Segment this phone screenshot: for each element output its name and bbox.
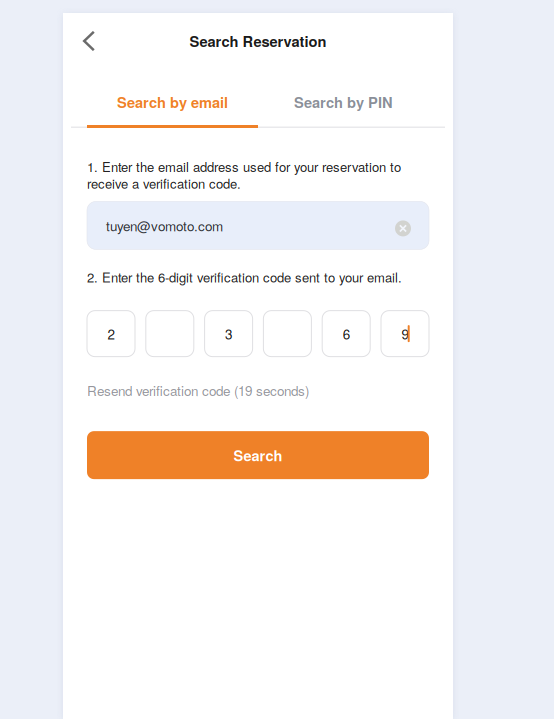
button[interactable]: Clear email bbox=[387, 210, 417, 240]
staticText: tuyen@vomoto.com bbox=[106, 216, 223, 235]
button[interactable]: Resend verification code (19 seconds) bbox=[87, 381, 429, 399]
staticText: 3 bbox=[225, 324, 232, 343]
staticText: Search bbox=[233, 445, 282, 466]
button[interactable]: Search by PIN bbox=[258, 88, 429, 128]
staticText: Resend verification code (19 seconds) bbox=[87, 380, 309, 400]
button[interactable]: Search bbox=[87, 431, 429, 479]
button[interactable]: Search by email bbox=[87, 88, 258, 128]
staticText: 9 bbox=[401, 324, 408, 343]
staticText: 2. Enter the 6-digit verification code s… bbox=[87, 267, 402, 286]
staticText: 2 bbox=[107, 324, 114, 343]
staticText: 6 bbox=[343, 324, 350, 343]
button[interactable]: Back bbox=[63, 19, 115, 63]
staticText: Search Reservation bbox=[189, 30, 326, 51]
staticText: Search by PIN bbox=[294, 91, 393, 112]
staticText: Search by email bbox=[117, 91, 228, 112]
staticText: 1. Enter the email address used for your… bbox=[87, 157, 401, 192]
